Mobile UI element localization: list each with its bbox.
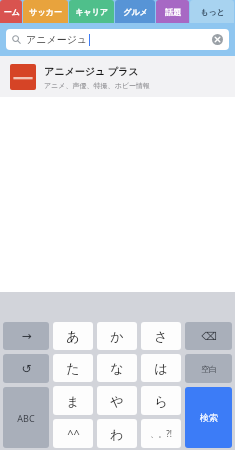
staticText: は xyxy=(154,360,168,376)
button[interactable]: サッカー xyxy=(23,0,68,23)
staticText: さ xyxy=(154,328,168,344)
staticText: ま xyxy=(66,393,80,409)
staticText: もっと xyxy=(200,7,225,17)
staticText: アニメージュ プラス xyxy=(44,64,139,78)
staticText: → xyxy=(21,329,32,343)
staticText: ABC xyxy=(17,412,35,424)
staticText: ら xyxy=(154,393,168,409)
staticText: キャリア xyxy=(75,7,108,17)
button[interactable]: ーム xyxy=(0,0,22,23)
staticText: た xyxy=(66,360,80,376)
button[interactable]: な xyxy=(97,354,137,382)
staticText: 、。?! xyxy=(150,428,172,439)
button[interactable]: → xyxy=(3,322,49,350)
button[interactable]: た xyxy=(53,354,93,382)
staticText: 話題 xyxy=(165,7,181,17)
staticText: サッカー xyxy=(29,7,62,17)
staticText: グルメ xyxy=(123,7,148,17)
staticText: や xyxy=(110,393,124,409)
button[interactable]: グルメ xyxy=(115,0,155,23)
staticText: ↺ xyxy=(21,362,32,376)
button[interactable]: アニメージュ プラス xyxy=(0,56,235,97)
staticText: な xyxy=(110,360,124,376)
button[interactable]: アニメージュ xyxy=(6,29,229,50)
staticText: アニメージュ xyxy=(26,33,88,46)
staticText: ^^ xyxy=(67,426,80,441)
staticText: 空白 xyxy=(201,364,217,374)
staticText: ⌫ xyxy=(201,330,217,343)
button[interactable]: 話題 xyxy=(156,0,189,23)
button[interactable]: ^^ xyxy=(53,419,93,448)
button[interactable]: ABC xyxy=(3,387,49,448)
button[interactable]: ⌫ xyxy=(185,322,232,350)
staticText: ーム xyxy=(3,7,20,17)
button[interactable]: 空白 xyxy=(185,354,232,383)
button[interactable]: か xyxy=(97,322,137,350)
button[interactable]: ら xyxy=(141,386,181,415)
staticText: アニメ、声優、特撮、ホビー情報 xyxy=(44,81,150,90)
button[interactable]: さ xyxy=(141,322,181,350)
button[interactable]: Clear search xyxy=(212,34,223,45)
staticText: 検索 xyxy=(200,412,218,423)
staticText: わ xyxy=(110,426,124,442)
button[interactable]: わ xyxy=(97,419,137,448)
button[interactable]: や xyxy=(97,386,137,415)
button[interactable]: 検索 xyxy=(185,387,232,448)
button[interactable]: キャリア xyxy=(69,0,114,23)
staticText: あ xyxy=(66,328,80,344)
button[interactable]: ↺ xyxy=(3,354,49,383)
button[interactable]: あ xyxy=(53,322,93,350)
button[interactable]: ま xyxy=(53,386,93,415)
button[interactable]: もっと xyxy=(190,0,234,23)
staticText: か xyxy=(110,328,124,344)
button[interactable]: 、。?! xyxy=(141,419,181,448)
button[interactable]: は xyxy=(141,354,181,382)
